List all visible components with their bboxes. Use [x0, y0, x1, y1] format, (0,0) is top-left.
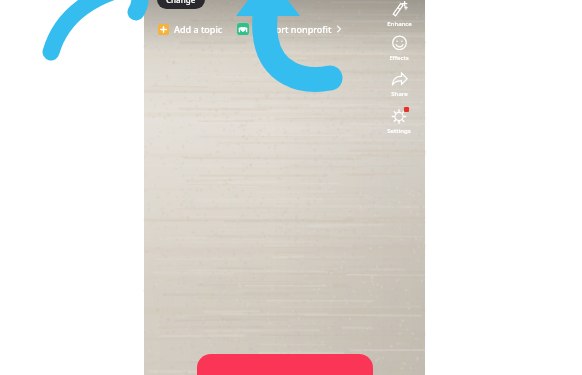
button[interactable]: Share: [379, 70, 419, 99]
staticText: Change: [166, 0, 196, 5]
button[interactable]: Create: [197, 354, 373, 375]
staticText: Enhance: [387, 20, 412, 28]
button[interactable]: Change: [157, 0, 205, 9]
staticText: Add a topic: [174, 23, 223, 35]
staticText: Settings: [387, 127, 411, 135]
button[interactable]: Add a topic: [158, 22, 223, 36]
staticText: Share: [391, 90, 408, 98]
button[interactable]: Settings: [379, 107, 419, 136]
staticText: Effects: [389, 54, 409, 62]
staticText: Support nonprofit: [254, 23, 332, 35]
button[interactable]: Effects: [379, 34, 419, 63]
button[interactable]: Support nonprofit: [237, 22, 342, 36]
button[interactable]: Enhance: [379, 0, 419, 29]
